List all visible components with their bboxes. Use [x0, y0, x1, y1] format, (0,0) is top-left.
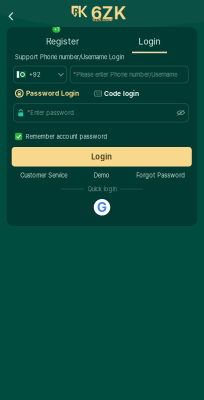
- staticText: Code login: [104, 89, 139, 98]
- staticText: G: [97, 199, 107, 215]
- staticText: +92: [29, 71, 41, 78]
- button[interactable]: Demo: [94, 172, 110, 179]
- staticText: Login: [91, 152, 112, 161]
- staticText: 6ZK: [91, 2, 126, 23]
- staticText: Demo: [94, 172, 110, 179]
- button[interactable]: Remember account password: [15, 133, 107, 140]
- button[interactable]: Forgot Password: [136, 172, 185, 179]
- staticText: Please enter Phone number/Username: [76, 71, 177, 78]
- staticText: *: [73, 71, 76, 78]
- staticText: +1: [54, 26, 59, 32]
- staticText: Customer Service: [20, 172, 67, 179]
- staticText: *: [27, 109, 30, 116]
- staticText: 6ZK.COM: [92, 17, 112, 22]
- button[interactable]: Register: [32, 34, 92, 48]
- button[interactable]: Customer Service: [20, 172, 67, 179]
- staticText: Enter password: [30, 109, 74, 116]
- staticText: Remember account password: [25, 133, 107, 140]
- staticText: Forgot Password: [136, 172, 185, 179]
- button[interactable]: Login: [119, 34, 179, 50]
- staticText: Register: [46, 36, 79, 47]
- staticText: R: [73, 6, 79, 17]
- staticText: Quick login: [87, 185, 116, 193]
- staticText: Support Phone number/Username Login: [15, 54, 124, 61]
- button[interactable]: Password Login: [15, 89, 79, 98]
- button[interactable]: Back: [4, 8, 17, 24]
- staticText: Password Login: [26, 89, 79, 97]
- staticText: 123: [96, 91, 101, 96]
- button[interactable]: 123: [95, 89, 139, 98]
- button[interactable]: Login: [12, 147, 192, 166]
- staticText: Login: [138, 36, 160, 47]
